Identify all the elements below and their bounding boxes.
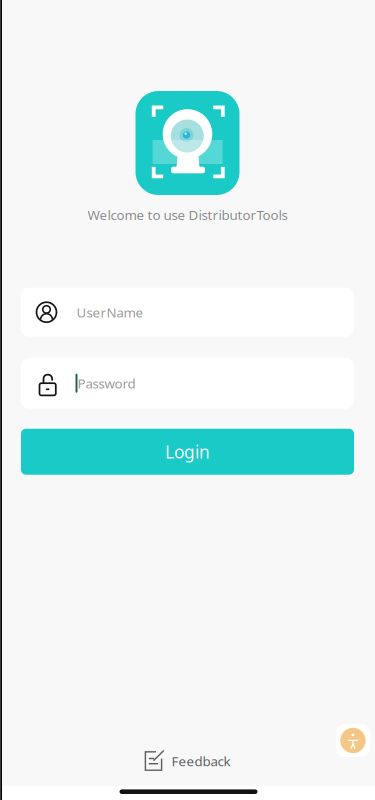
button[interactable]: Accessibility <box>336 724 370 757</box>
staticText: Login <box>165 440 210 463</box>
button[interactable]: Login <box>21 429 354 475</box>
staticText: Feedback <box>171 752 230 770</box>
staticText: Password <box>77 374 135 392</box>
button[interactable]: Feedback <box>0 736 375 786</box>
staticText: Welcome to use DistributorTools <box>87 206 287 224</box>
staticText: UserName <box>76 303 143 321</box>
